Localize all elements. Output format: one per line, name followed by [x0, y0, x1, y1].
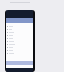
button[interactable]: [6, 25, 33, 28]
button[interactable]: [6, 37, 33, 40]
button[interactable]: [6, 46, 33, 49]
button[interactable]: [6, 43, 33, 46]
button[interactable]: [6, 34, 33, 37]
button[interactable]: [6, 52, 33, 55]
button[interactable]: [6, 31, 33, 34]
button[interactable]: [6, 28, 33, 31]
button[interactable]: [6, 49, 33, 52]
button[interactable]: [6, 40, 33, 43]
